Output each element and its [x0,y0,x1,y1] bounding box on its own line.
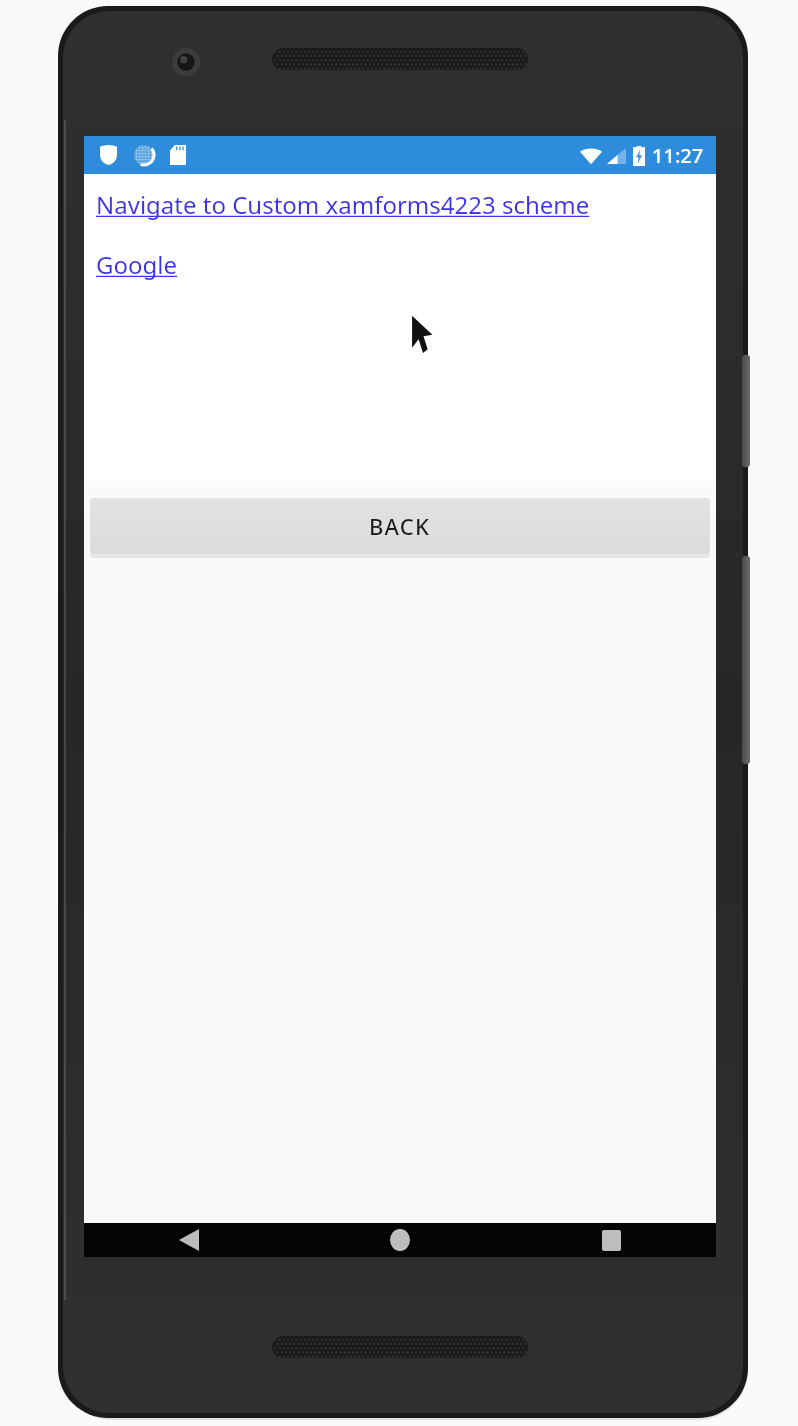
button[interactable]: Navigate to Custom xamforms4223 scheme [96,188,590,221]
button[interactable]: Google [96,248,177,281]
staticText: Navigate to Custom xamforms4223 scheme [96,188,590,221]
button[interactable]: BACK [90,498,710,554]
staticText: 11:27 [652,142,704,169]
button[interactable]: Home [294,1223,506,1257]
staticText: BACK [369,511,431,541]
button[interactable]: Back [84,1223,294,1257]
button[interactable]: Recent apps [506,1223,716,1257]
staticText: Google [96,248,177,281]
